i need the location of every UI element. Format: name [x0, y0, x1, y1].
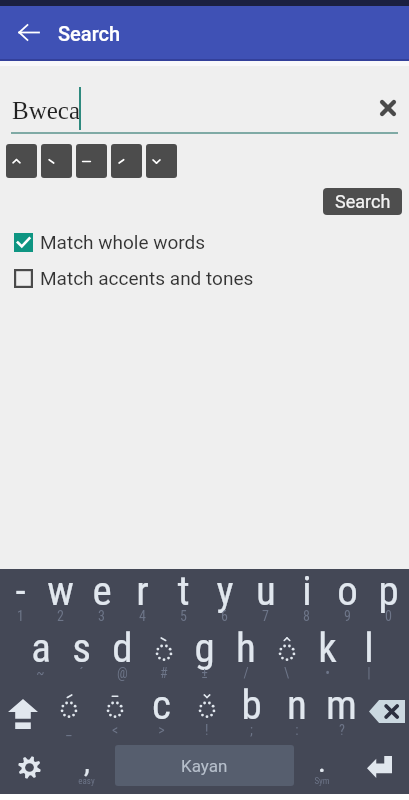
button[interactable]: , — [58, 740, 115, 794]
staticText: 1 — [17, 608, 24, 624]
staticText: 5 — [180, 608, 187, 624]
staticText: w — [47, 567, 74, 615]
staticText: p — [378, 567, 399, 615]
staticText: Search — [335, 191, 391, 212]
staticText: ± — [201, 665, 208, 681]
staticText: 9 — [344, 608, 351, 624]
button[interactable]: g — [184, 626, 225, 683]
staticText: | — [367, 665, 371, 681]
staticText: ? — [339, 722, 345, 738]
button[interactable]: Back — [2, 6, 54, 58]
staticText: \ — [284, 665, 290, 681]
button[interactable]: o — [327, 569, 368, 626]
button[interactable]: n — [274, 683, 319, 740]
button[interactable]: Grave accent dead key — [143, 626, 184, 683]
button[interactable]: Caron accent — [146, 144, 177, 178]
button[interactable]: h — [225, 626, 266, 683]
staticText: r — [136, 567, 149, 615]
button[interactable]: e — [81, 569, 122, 626]
staticText: d — [112, 624, 133, 672]
button[interactable]: Acute accent — [111, 144, 142, 178]
staticText: • — [325, 665, 330, 681]
staticText: Sym — [314, 776, 330, 787]
button[interactable]: c — [138, 683, 184, 740]
staticText: > — [158, 722, 165, 738]
staticText: 6 — [221, 608, 228, 624]
staticText: Bweca — [12, 97, 81, 125]
button[interactable]: Macron accent dead key — [92, 683, 138, 740]
staticText: ; — [250, 722, 253, 738]
staticText: n — [287, 681, 307, 729]
staticText: 4 — [139, 608, 146, 624]
button[interactable]: Grave accent — [41, 144, 72, 178]
staticText: 8 — [303, 608, 310, 624]
button[interactable]: Acute accent dead key — [46, 683, 92, 740]
button[interactable]: m — [319, 683, 364, 740]
staticText: c — [152, 681, 171, 729]
button[interactable]: Kayan — [115, 745, 294, 786]
button[interactable]: y — [204, 569, 245, 626]
staticText: s — [72, 624, 91, 672]
button[interactable]: s — [61, 626, 102, 683]
button[interactable]: t — [163, 569, 204, 626]
button[interactable]: Settings — [0, 740, 58, 794]
staticText: 3 — [98, 608, 105, 624]
staticText: . — [318, 744, 326, 779]
staticText: Search — [58, 22, 121, 45]
staticText: easy — [78, 776, 95, 787]
staticText: y — [216, 567, 234, 615]
button[interactable]: p — [368, 569, 409, 626]
staticText: Match accents and tones — [40, 267, 254, 289]
button[interactable]: Match whole words — [0, 227, 409, 257]
button[interactable]: Clear text — [370, 90, 406, 126]
staticText: / — [243, 665, 249, 681]
staticText: 2 — [57, 608, 64, 624]
button[interactable]: l — [348, 626, 389, 683]
button[interactable]: w — [40, 569, 81, 626]
staticText: @ — [117, 665, 128, 681]
button[interactable]: Macron accent — [76, 144, 107, 178]
button[interactable]: Match accents and tones — [0, 263, 409, 293]
button[interactable]: - — [0, 569, 40, 626]
button[interactable]: u — [245, 569, 286, 626]
staticText: ! — [205, 722, 209, 738]
staticText: Kayan — [181, 756, 228, 776]
staticText: ~ — [36, 665, 45, 681]
button[interactable]: Circumflex accent — [6, 144, 37, 178]
button[interactable]: Circumflex accent dead key — [266, 626, 307, 683]
button[interactable]: i — [286, 569, 327, 626]
staticText: a — [31, 624, 51, 672]
staticText: - — [15, 567, 26, 615]
staticText: o — [337, 567, 358, 615]
staticText: g — [194, 624, 215, 672]
button[interactable]: Shift — [0, 683, 46, 740]
button[interactable]: . — [294, 740, 350, 794]
staticText: m — [326, 681, 357, 729]
button[interactable]: Caron accent dead key — [184, 683, 229, 740]
staticText: 0 — [385, 608, 392, 624]
staticText: u — [256, 567, 276, 615]
staticText: b — [241, 681, 262, 729]
staticText: h — [236, 624, 256, 672]
button[interactable]: r — [122, 569, 163, 626]
staticText: i — [302, 567, 312, 615]
staticText: ´ — [79, 665, 84, 681]
staticText: l — [364, 624, 374, 672]
button[interactable]: Backspace — [364, 683, 409, 740]
staticText: Match whole words — [40, 231, 206, 253]
staticText: , — [84, 744, 90, 779]
button[interactable]: a — [20, 626, 61, 683]
button[interactable]: b — [229, 683, 274, 740]
button[interactable]: d — [102, 626, 143, 683]
staticText: < — [112, 722, 119, 738]
button[interactable]: k — [307, 626, 348, 683]
staticText: e — [92, 567, 112, 615]
staticText: # — [160, 665, 168, 681]
staticText: _ — [66, 722, 72, 738]
staticText: k — [318, 624, 337, 672]
button[interactable]: Enter — [350, 740, 409, 794]
staticText: t — [177, 567, 190, 615]
staticText: : — [295, 722, 299, 738]
button[interactable]: Search — [323, 188, 402, 215]
staticText: 7 — [262, 608, 269, 624]
